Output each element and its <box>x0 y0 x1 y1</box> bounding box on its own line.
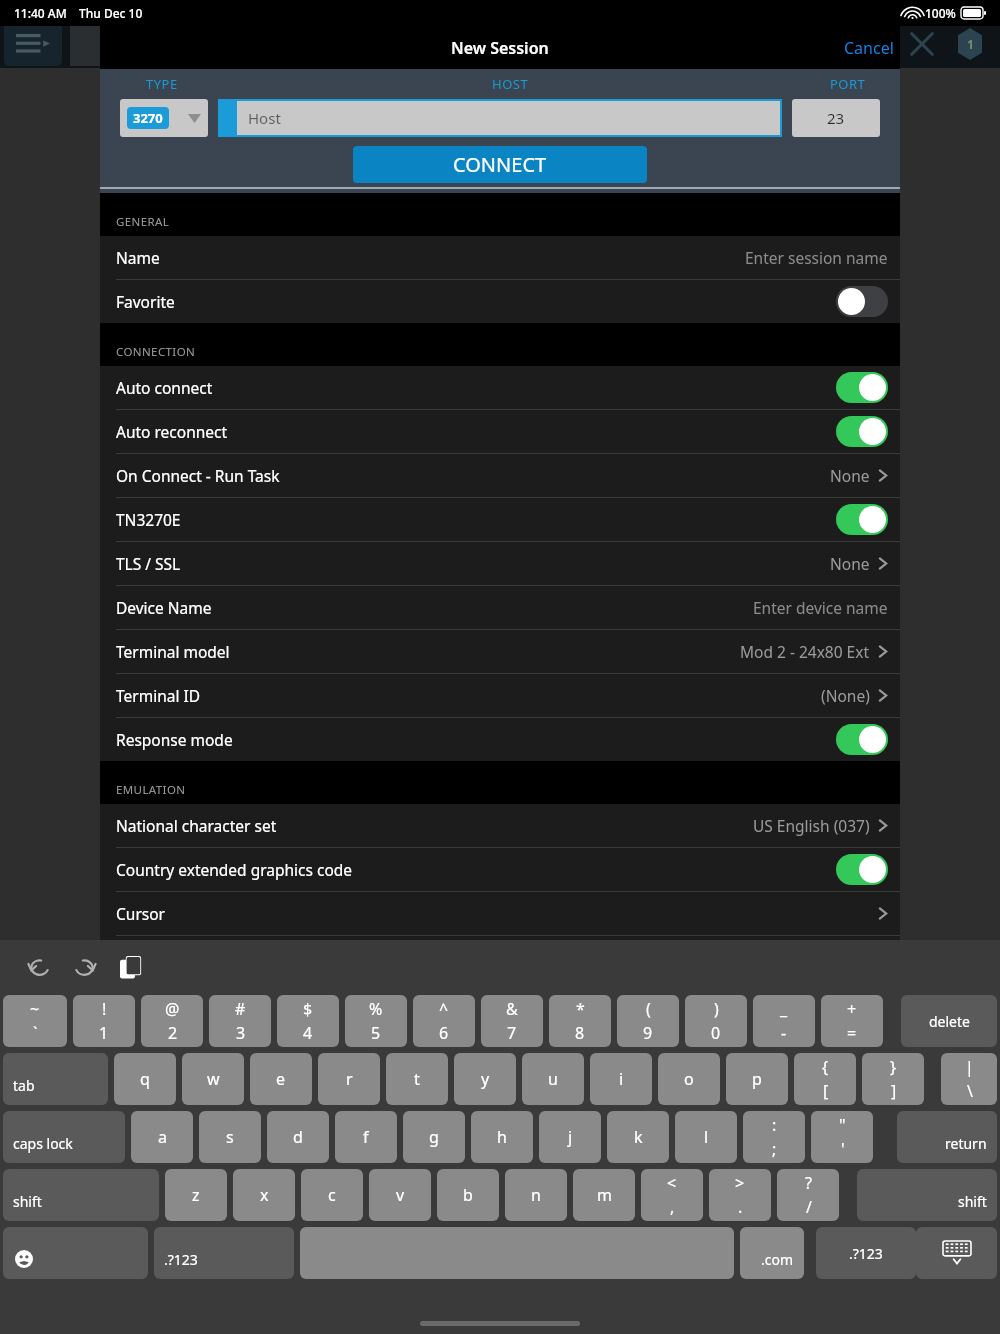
button[interactable]: Name <box>100 236 900 279</box>
staticText: j <box>568 1126 573 1148</box>
button[interactable]: National character set <box>100 804 900 847</box>
button[interactable]: ? <box>777 1169 839 1221</box>
button[interactable]: .com <box>740 1227 804 1279</box>
button[interactable]: < <box>641 1169 703 1221</box>
staticText: v <box>396 1184 405 1206</box>
staticText: Auto connect <box>116 377 213 398</box>
button[interactable] <box>836 286 888 317</box>
button[interactable]: u <box>522 1053 584 1105</box>
button[interactable] <box>836 854 888 885</box>
button[interactable]: " <box>811 1111 873 1163</box>
button[interactable]: w <box>182 1053 244 1105</box>
button[interactable]: Response mode <box>100 718 900 761</box>
button[interactable]: ^ <box>413 995 475 1047</box>
button[interactable]: * <box>549 995 611 1047</box>
button[interactable]: x <box>233 1169 295 1221</box>
button[interactable]: | <box>941 1053 997 1105</box>
button[interactable]: Terminal ID <box>100 674 900 717</box>
button[interactable]: o <box>658 1053 720 1105</box>
button[interactable]: $ <box>277 995 339 1047</box>
staticText: : <box>772 1114 777 1136</box>
button[interactable]: Paste <box>112 949 150 987</box>
button[interactable]: f <box>335 1111 397 1163</box>
staticText: Response mode <box>116 729 233 750</box>
button[interactable]: a <box>131 1111 193 1163</box>
staticText: EMULATION <box>116 782 186 798</box>
button[interactable]: c <box>301 1169 363 1221</box>
staticText: None <box>830 465 870 486</box>
button[interactable]: Auto reconnect <box>100 410 900 453</box>
button[interactable]: _ <box>753 995 815 1047</box>
button[interactable]: TN3270E <box>100 498 900 541</box>
button[interactable]: v <box>369 1169 431 1221</box>
staticText: , <box>670 1196 675 1218</box>
button[interactable]: Auto connect <box>100 366 900 409</box>
staticText: g <box>429 1126 439 1148</box>
button[interactable]: h <box>471 1111 533 1163</box>
button[interactable]: & <box>481 995 543 1047</box>
button[interactable]: ! <box>73 995 135 1047</box>
button[interactable]: @ <box>141 995 203 1047</box>
button[interactable]: TLS / SSL <box>100 542 900 585</box>
button[interactable]: + <box>821 995 883 1047</box>
button[interactable]: On Connect - Run Task <box>100 454 900 497</box>
button[interactable]: .?123 <box>816 1227 916 1279</box>
button[interactable]: ~ <box>3 995 67 1047</box>
button[interactable]: z <box>165 1169 227 1221</box>
button[interactable]: 23 <box>792 99 880 137</box>
button[interactable]: Cursor <box>100 892 900 935</box>
button[interactable]: q <box>114 1053 176 1105</box>
button[interactable]: return <box>897 1111 997 1163</box>
button[interactable]: Terminal model <box>100 630 900 673</box>
button[interactable] <box>836 724 888 755</box>
button[interactable]: e <box>250 1053 312 1105</box>
button[interactable]: ) <box>685 995 747 1047</box>
button[interactable]: Favorite <box>100 280 900 323</box>
button[interactable]: m <box>573 1169 635 1221</box>
button[interactable]: CONNECT <box>353 146 647 183</box>
button[interactable] <box>836 416 888 447</box>
button[interactable]: > <box>709 1169 771 1221</box>
button[interactable]: t <box>386 1053 448 1105</box>
button[interactable]: r <box>318 1053 380 1105</box>
button[interactable]: j <box>539 1111 601 1163</box>
button[interactable]: tab <box>3 1053 108 1105</box>
button[interactable]: # <box>209 995 271 1047</box>
button[interactable]: n <box>505 1169 567 1221</box>
button[interactable]: % <box>345 995 407 1047</box>
button[interactable]: Undo <box>20 949 58 987</box>
button[interactable]: Cancel <box>838 29 900 67</box>
button[interactable]: Redo <box>66 949 104 987</box>
staticText: b <box>463 1184 473 1206</box>
button[interactable]: : <box>743 1111 805 1163</box>
button[interactable]: shift <box>857 1169 997 1221</box>
button[interactable]: b <box>437 1169 499 1221</box>
button[interactable]: ( <box>617 995 679 1047</box>
button[interactable]: k <box>607 1111 669 1163</box>
button[interactable]: l <box>675 1111 737 1163</box>
button[interactable]: 3270 <box>120 99 208 137</box>
button[interactable]: shift <box>3 1169 159 1221</box>
button[interactable]: Device Name <box>100 586 900 629</box>
button[interactable]: } <box>862 1053 924 1105</box>
button[interactable] <box>836 372 888 403</box>
button[interactable]: delete <box>901 995 997 1047</box>
button[interactable]: Country extended graphics code <box>100 848 900 891</box>
button[interactable]: Hide keyboard <box>916 1227 997 1279</box>
staticText: CONNECT <box>453 151 547 178</box>
button[interactable]: p <box>726 1053 788 1105</box>
staticText: Cancel <box>844 37 894 59</box>
button[interactable]: y <box>454 1053 516 1105</box>
button[interactable]: g <box>403 1111 465 1163</box>
button[interactable]: Emoji <box>3 1227 148 1279</box>
button[interactable] <box>836 504 888 535</box>
button[interactable]: s <box>199 1111 261 1163</box>
staticText: ? <box>805 1172 812 1194</box>
button[interactable]: .?123 <box>154 1227 294 1279</box>
button[interactable]: { <box>794 1053 856 1105</box>
button[interactable]: i <box>590 1053 652 1105</box>
staticText: 1 <box>99 1022 109 1044</box>
button[interactable]: d <box>267 1111 329 1163</box>
button[interactable]: caps lock <box>3 1111 125 1163</box>
